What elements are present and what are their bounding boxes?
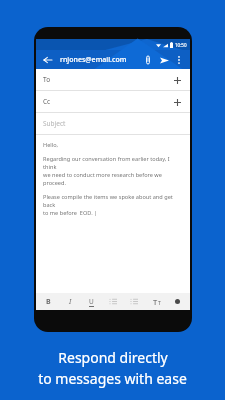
button[interactable]: Text color bbox=[169, 293, 186, 310]
staticText: B bbox=[46, 297, 51, 307]
button[interactable]: Numbered list bbox=[126, 293, 143, 310]
staticText: T bbox=[158, 300, 161, 307]
staticText: I bbox=[69, 297, 72, 307]
button[interactable]: Subject bbox=[36, 113, 190, 134]
staticText: Please compile the items we spoke about … bbox=[43, 193, 183, 217]
button[interactable]: More options bbox=[173, 54, 185, 66]
button[interactable]: Italic bbox=[62, 293, 79, 310]
button[interactable]: Add To recipient bbox=[171, 74, 183, 86]
button[interactable]: Back bbox=[41, 53, 54, 66]
button[interactable]: Bold bbox=[40, 293, 57, 310]
staticText: U bbox=[89, 297, 94, 306]
button[interactable]: Underline bbox=[83, 293, 100, 310]
staticText: To bbox=[43, 75, 51, 84]
button[interactable]: To bbox=[36, 69, 190, 90]
button[interactable]: Text formatting bbox=[148, 293, 165, 310]
button[interactable]: Bulleted list bbox=[105, 293, 122, 310]
staticText: rnjones@email.com bbox=[60, 55, 127, 65]
button[interactable]: Attach file bbox=[141, 53, 154, 66]
staticText: Subject bbox=[43, 119, 66, 128]
staticText: to messages with ease bbox=[38, 369, 187, 388]
staticText: Cc bbox=[43, 97, 51, 106]
staticText: 10:50 bbox=[175, 42, 187, 48]
staticText: Regarding our conversation from earlier … bbox=[43, 155, 183, 187]
button[interactable]: Cc bbox=[36, 91, 190, 112]
button[interactable]: Hello, bbox=[36, 135, 190, 293]
staticText: Respond directly bbox=[58, 348, 168, 367]
staticText: T bbox=[153, 297, 158, 307]
button[interactable]: Send bbox=[157, 53, 171, 67]
button[interactable]: Add Cc recipient bbox=[171, 96, 183, 108]
staticText: Hello, bbox=[43, 141, 59, 149]
